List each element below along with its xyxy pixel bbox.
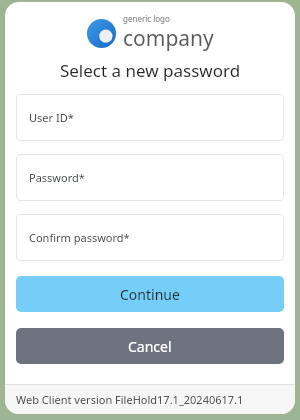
staticText: Continue [120,285,180,304]
button[interactable]: User ID* [16,94,284,141]
staticText: Confirm password* [29,230,130,245]
staticText: User ID* [29,110,74,125]
staticText: Password* [29,170,85,185]
staticText: company [123,24,214,53]
button[interactable]: Continue [16,276,284,312]
staticText: Select a new password [5,59,295,82]
staticText: generic logo [123,13,170,24]
other: Company logo [87,19,116,48]
button[interactable]: Confirm password* [16,214,284,261]
staticText: Cancel [128,337,172,356]
button[interactable]: Cancel [16,328,284,364]
staticText: Web Client version FileHold17.1_20240617… [16,392,244,407]
button[interactable]: Password* [16,154,284,201]
